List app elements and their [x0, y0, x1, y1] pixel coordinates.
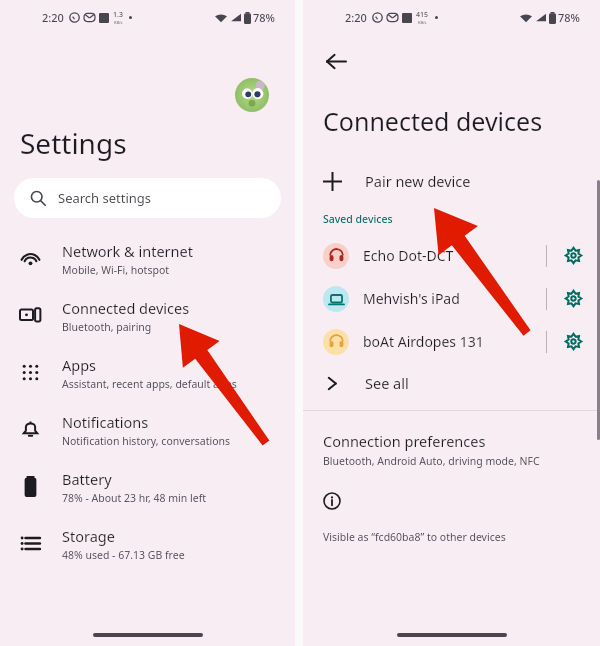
staticText: 78%: [253, 10, 275, 25]
button[interactable]: Pair new device: [303, 160, 600, 202]
button[interactable]: Search settings: [14, 178, 281, 218]
staticText: Assistant, recent apps, default apps: [62, 377, 237, 391]
staticText: boAt Airdopes 131: [363, 332, 484, 351]
button[interactable]: Connected devices: [0, 287, 295, 344]
staticText: Settings: [20, 124, 127, 162]
staticText: 2:20: [345, 10, 367, 25]
staticText: 1.3: [113, 10, 123, 20]
staticText: Mobile, Wi-Fi, hotspot: [62, 263, 170, 277]
staticText: Connected devices: [62, 298, 190, 318]
button[interactable]: Device settings for Echo Dot-DCT: [547, 234, 600, 277]
button[interactable]: Device settings for boAt Airdopes 131: [547, 320, 600, 363]
staticText: Echo Dot-DCT: [363, 246, 454, 265]
staticText: Saved devices: [323, 212, 393, 226]
staticText: 415: [416, 10, 429, 20]
button[interactable]: Echo Dot-DCT: [303, 234, 546, 277]
button[interactable]: Notifications: [0, 401, 295, 458]
staticText: Connected devices: [323, 104, 543, 138]
button[interactable]: See all: [303, 363, 600, 403]
button[interactable]: Apps: [0, 344, 295, 401]
staticText: Notifications: [62, 412, 149, 432]
staticText: Battery: [62, 469, 112, 489]
button[interactable]: Mehvish's iPad: [303, 277, 546, 320]
button[interactable]: Battery: [0, 458, 295, 515]
button[interactable]: Device settings for Mehvish's iPad: [547, 277, 600, 320]
staticText: 78% - About 23 hr, 48 min left: [62, 491, 207, 505]
button[interactable]: Account avatar: [235, 78, 269, 112]
staticText: Notification history, conversations: [62, 434, 231, 448]
staticText: Pair new device: [365, 171, 471, 191]
staticText: Bluetooth, pairing: [62, 320, 152, 334]
staticText: Bluetooth, Android Auto, driving mode, N…: [323, 454, 540, 468]
button[interactable]: Connection preferences: [303, 429, 600, 470]
staticText: Connection preferences: [323, 431, 486, 451]
staticText: Storage: [62, 526, 115, 546]
staticText: 2:20: [42, 10, 64, 25]
staticText: Apps: [62, 355, 97, 375]
staticText: Mehvish's iPad: [363, 289, 460, 308]
staticText: 48% used - 67.13 GB free: [62, 548, 185, 562]
staticText: Search settings: [58, 189, 152, 207]
staticText: See all: [365, 373, 409, 393]
button[interactable]: Storage: [0, 515, 295, 572]
staticText: Network & internet: [62, 241, 193, 261]
button[interactable]: boAt Airdopes 131: [303, 320, 546, 363]
staticText: 78%: [558, 10, 580, 25]
staticText: KB/s: [418, 20, 427, 25]
staticText: KB/s: [114, 20, 123, 25]
staticText: Visible as “fcd60ba8” to other devices: [323, 530, 506, 544]
button[interactable]: Network & internet: [0, 230, 295, 287]
button[interactable]: Back: [317, 42, 355, 80]
